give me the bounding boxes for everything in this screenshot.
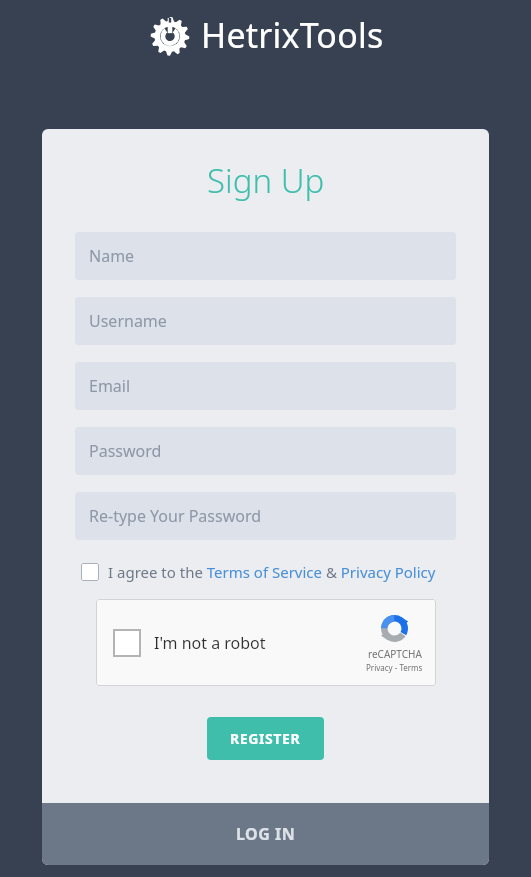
staticText: Password [89, 440, 162, 462]
staticText: I'm not a robot [154, 632, 266, 654]
button[interactable]: Re-type Your Password [75, 492, 456, 540]
staticText: Name [89, 245, 135, 267]
staticText: LOG IN [236, 823, 296, 845]
staticText: Username [89, 310, 167, 332]
button[interactable]: I agree to the Terms of Service & Privac… [81, 562, 436, 582]
button[interactable]: Name [75, 232, 456, 280]
staticText: I agree to the Terms of Service & Privac… [108, 562, 436, 582]
staticText: Privacy - Terms [366, 662, 423, 673]
staticText: HetrixTools [201, 12, 384, 58]
staticText: REGISTER [230, 729, 301, 748]
button[interactable]: REGISTER [207, 717, 324, 760]
button[interactable]: Password [75, 427, 456, 475]
button[interactable]: Username [75, 297, 456, 345]
staticText: Re-type Your Password [89, 505, 262, 527]
button[interactable]: Email [75, 362, 456, 410]
button[interactable]: I'm not a robot reCAPTCHA [96, 599, 436, 686]
staticText: Sign Up [207, 158, 325, 203]
staticText: Email [89, 375, 131, 397]
staticText: reCAPTCHA [368, 647, 422, 661]
button[interactable]: LOG IN [42, 803, 489, 865]
